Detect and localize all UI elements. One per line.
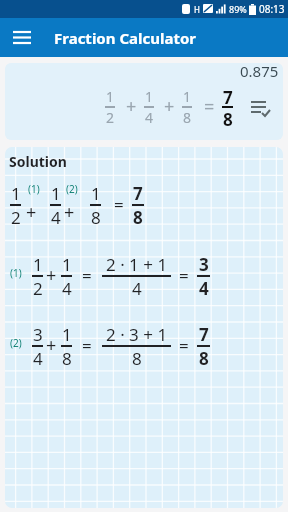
staticText: Solution	[9, 152, 67, 171]
staticText: 2 · 3 + 1	[106, 323, 168, 338]
staticText: 1	[11, 182, 21, 197]
button[interactable]	[0, 18, 44, 57]
staticText: 8	[132, 347, 142, 362]
staticText: 7	[133, 182, 143, 197]
staticText: 1	[145, 87, 154, 99]
staticText: 1	[183, 87, 192, 99]
staticText: 4	[132, 277, 142, 292]
staticText: =	[82, 264, 92, 287]
staticText: 1	[33, 253, 43, 268]
staticText: 8	[199, 347, 209, 362]
staticText: 2	[11, 206, 21, 221]
staticText: H	[194, 4, 200, 15]
staticText: 4	[62, 277, 72, 292]
staticText: 08:13	[259, 2, 285, 16]
staticText: 2 · 1 + 1	[106, 253, 168, 268]
staticText: 1	[91, 182, 101, 197]
button[interactable]	[251, 100, 270, 117]
staticText: 2	[33, 277, 43, 292]
staticText: (2)	[10, 336, 22, 350]
staticText: =	[204, 94, 215, 119]
staticText: 7	[223, 86, 233, 99]
staticText: 1	[106, 87, 115, 99]
staticText: +	[46, 263, 57, 288]
staticText: =	[82, 334, 92, 357]
staticText: 8	[183, 108, 192, 120]
staticText: (2)	[66, 182, 78, 196]
staticText: =	[179, 334, 189, 357]
staticText: 8	[133, 206, 143, 221]
staticText: +	[26, 200, 37, 225]
staticText: 4	[33, 347, 43, 362]
staticText: =	[179, 264, 189, 287]
staticText: 2	[106, 108, 115, 120]
staticText: +	[46, 333, 57, 358]
staticText: 1	[62, 323, 72, 338]
staticText: 4	[199, 277, 209, 292]
button[interactable]: 0.875	[5, 63, 283, 140]
staticText: =	[114, 193, 124, 216]
staticText: 4	[51, 206, 61, 221]
staticText: 8	[62, 347, 72, 362]
staticText: 3	[199, 253, 209, 268]
staticText: Fraction Calculator	[54, 28, 197, 48]
staticText: +	[126, 94, 137, 119]
staticText: (1)	[28, 182, 40, 196]
staticText: 1	[51, 182, 61, 197]
staticText: +	[64, 200, 75, 225]
staticText: 1	[62, 253, 72, 268]
staticText: 89%	[229, 3, 247, 15]
staticText: 8	[91, 206, 101, 221]
staticText: 4	[145, 108, 154, 120]
staticText: 8	[223, 108, 233, 121]
staticText: 0.875	[240, 63, 279, 81]
staticText: 3	[33, 323, 43, 338]
staticText: (1)	[10, 266, 22, 280]
staticText: +	[164, 94, 175, 119]
staticText: 7	[199, 323, 209, 338]
